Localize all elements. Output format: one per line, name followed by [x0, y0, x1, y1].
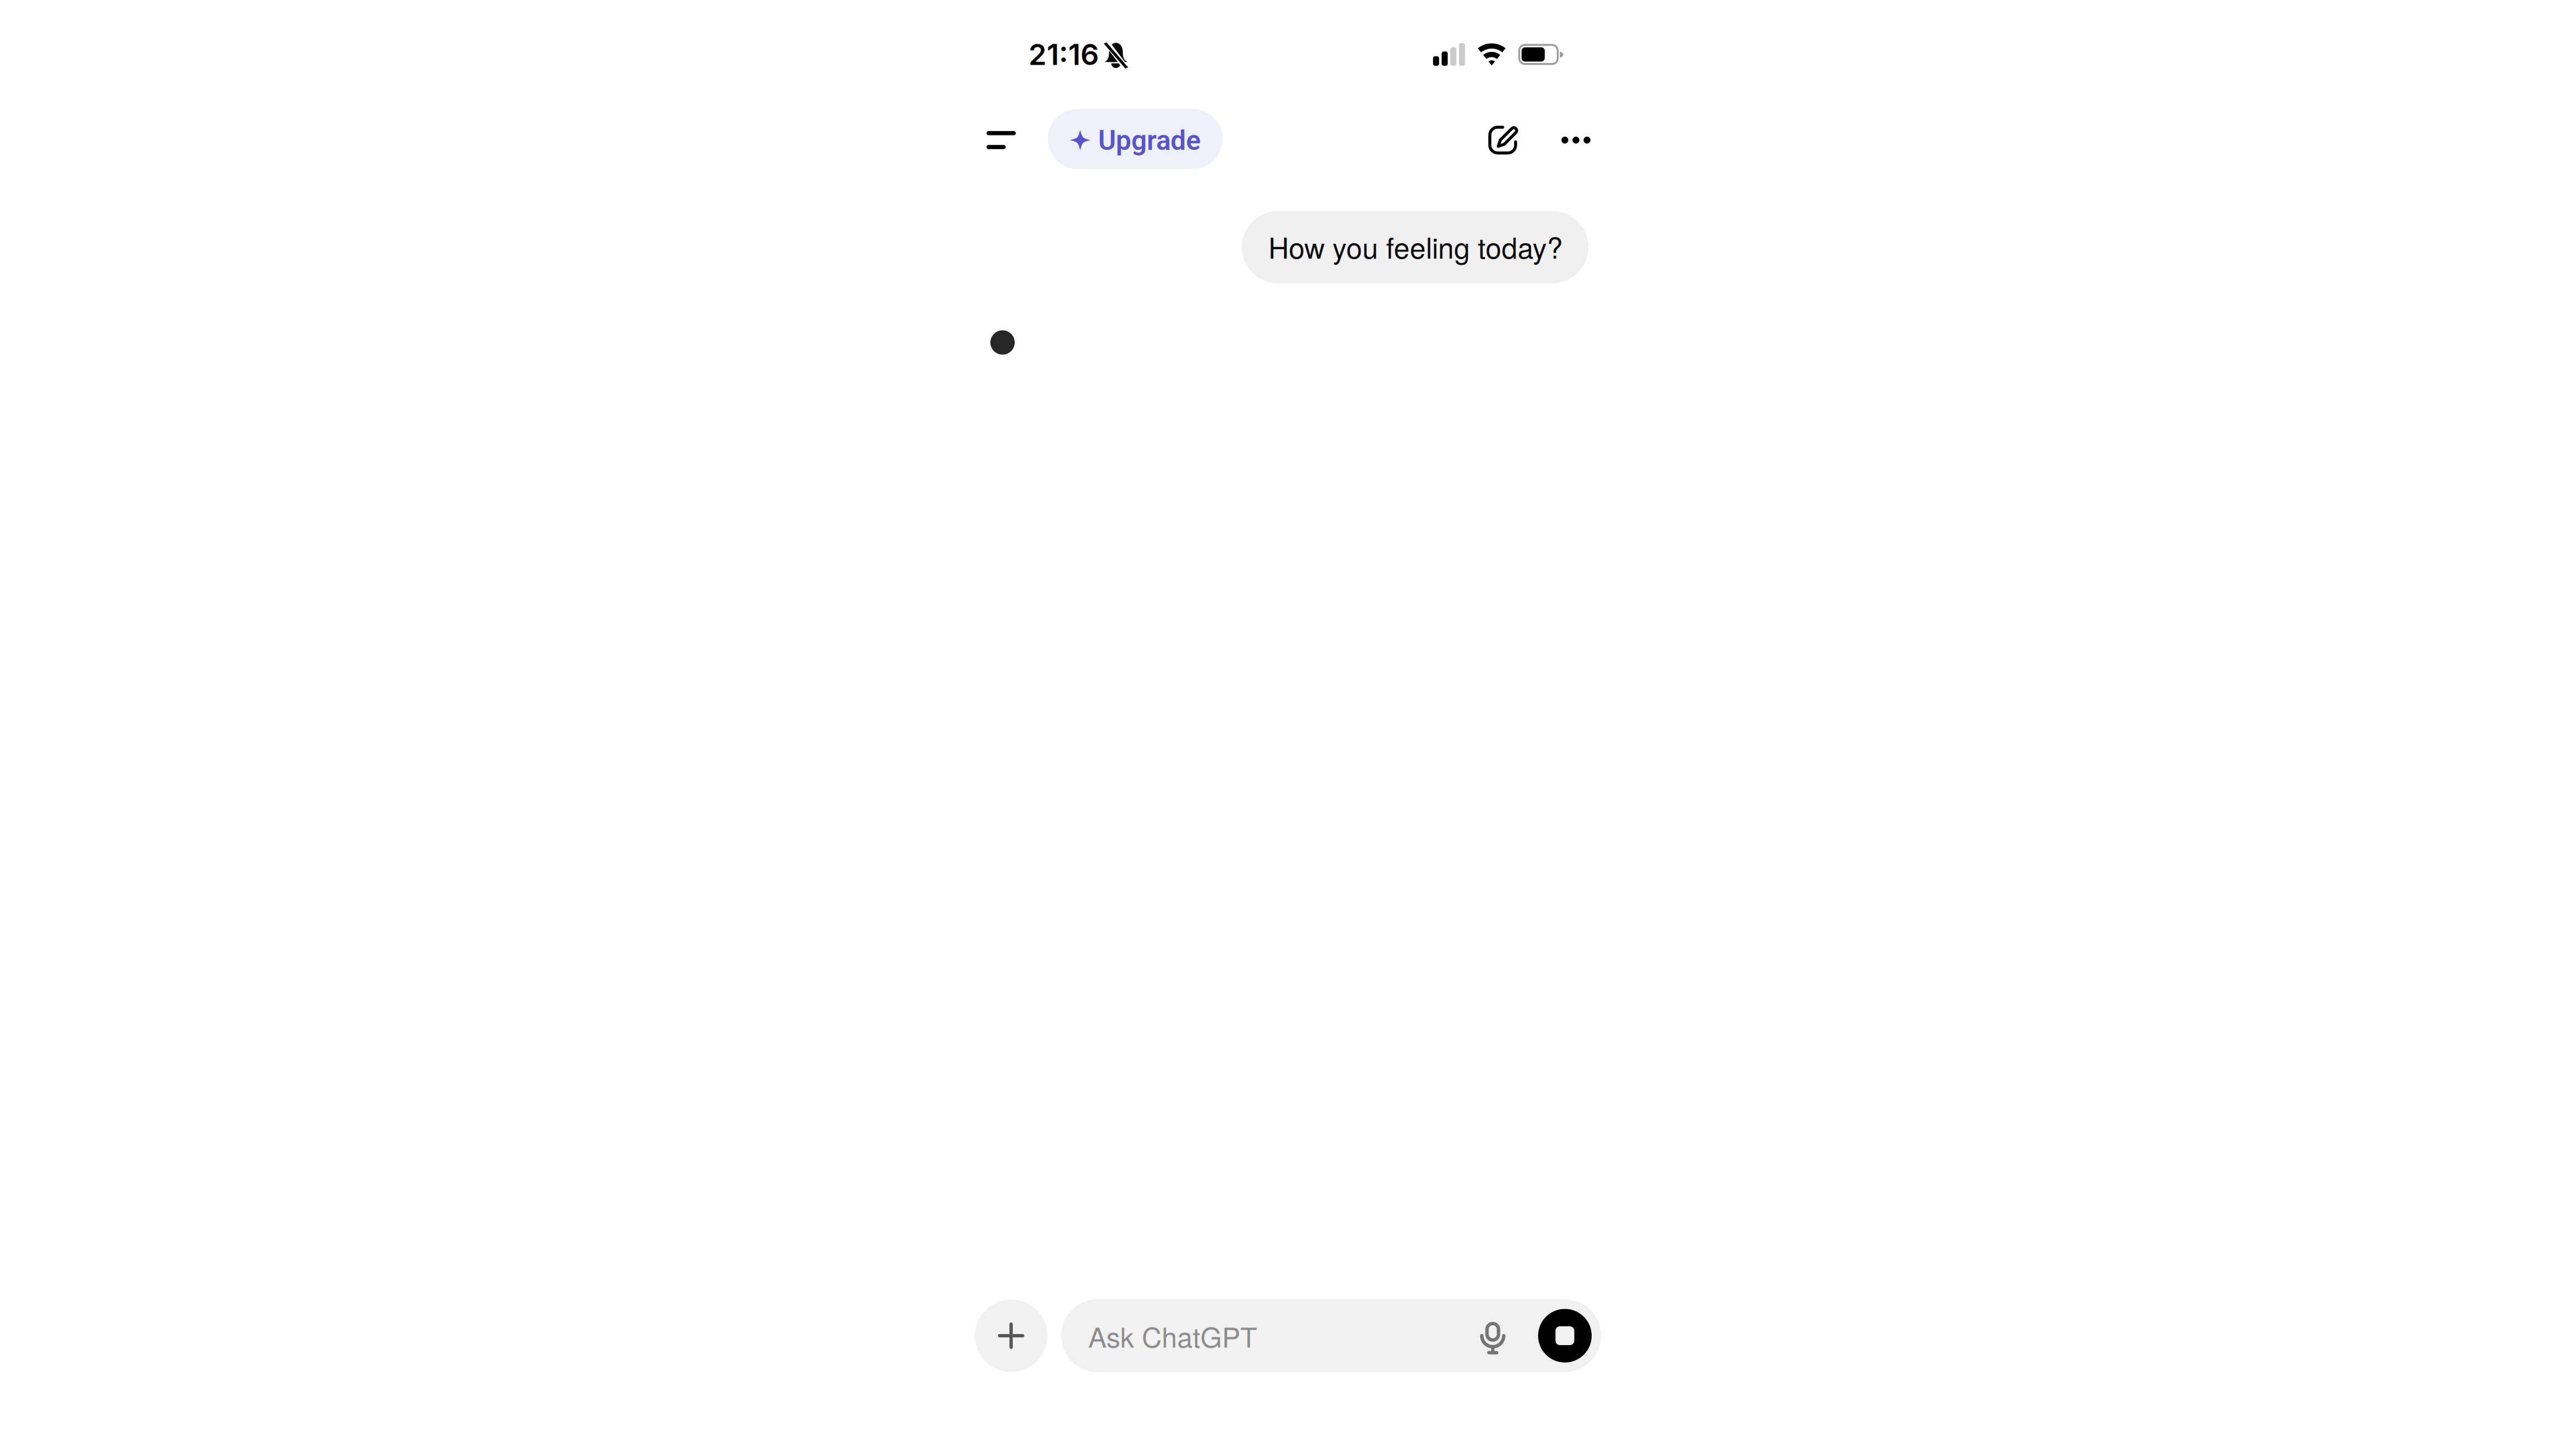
button[interactable]: Upgrade	[1048, 109, 1223, 169]
staticText: How you feeling today?	[1268, 226, 1563, 267]
button[interactable]: Sidebar	[975, 109, 1027, 169]
button[interactable]: Stop	[1538, 1299, 1592, 1372]
button[interactable]: Dictate	[1467, 1299, 1518, 1372]
button[interactable]: New chat	[1472, 109, 1533, 169]
staticText: Ask ChatGPT	[1088, 1316, 1257, 1355]
button[interactable]: Attach	[975, 1300, 1047, 1372]
button[interactable]: Ask ChatGPT	[1061, 1299, 1467, 1372]
staticText: 21:16	[1029, 37, 1099, 72]
button[interactable]: More options	[1551, 109, 1601, 169]
staticText: Upgrade	[1098, 125, 1201, 157]
